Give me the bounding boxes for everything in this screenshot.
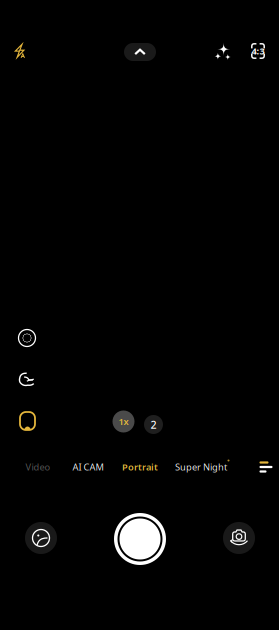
button[interactable]: 2x zoom: [144, 415, 163, 434]
button[interactable]: Super Night: [170, 455, 232, 479]
button[interactable]: Show more settings: [124, 43, 156, 61]
button[interactable]: AI enhancement: [209, 37, 237, 65]
button[interactable]: All camera modes: [256, 457, 276, 477]
button[interactable]: Flash auto: [3, 34, 37, 68]
staticText: Super Night: [175, 461, 227, 473]
button[interactable]: Video: [17, 455, 59, 479]
button[interactable]: Beauty: [12, 323, 42, 353]
button[interactable]: Portrait: [117, 455, 163, 479]
button[interactable]: Aspect ratio 4 to 3: [244, 37, 272, 65]
button[interactable]: AI CAM: [65, 455, 111, 479]
staticText: 4:3: [251, 45, 264, 57]
button[interactable]: Take photo: [112, 511, 168, 567]
staticText: 2: [150, 417, 156, 432]
staticText: Portrait: [122, 461, 158, 473]
staticText: 1x: [118, 415, 128, 428]
button[interactable]: Aperture: [12, 406, 42, 436]
staticText: Video: [25, 461, 50, 473]
button[interactable]: Gallery: [25, 522, 57, 554]
button[interactable]: 1x zoom: [112, 410, 134, 432]
button[interactable]: Body shaping: [12, 364, 42, 394]
button[interactable]: Switch camera: [223, 522, 255, 554]
staticText: AI CAM: [72, 461, 103, 473]
